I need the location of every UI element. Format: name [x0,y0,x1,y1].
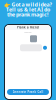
staticText: Prank a Friend [17,26,39,29]
staticText: Tell us & let AI do [6,6,50,13]
staticText: the prank magic! [7,11,49,18]
staticText: Today 9:41 [24,31,32,33]
staticText: 👉 Got a wild idea? [3,1,52,8]
staticText: Generate Prank Call [12,90,43,94]
